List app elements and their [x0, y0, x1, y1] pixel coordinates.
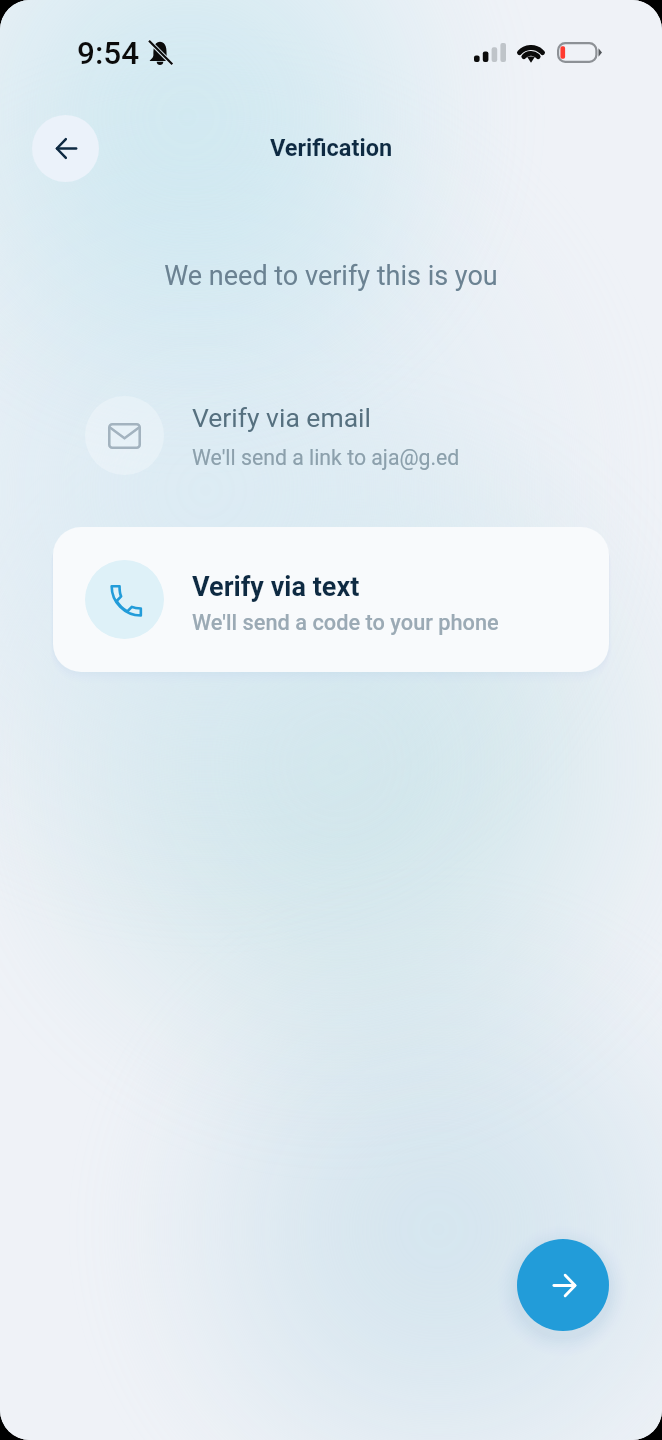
staticText: 9:54 [77, 35, 140, 72]
button[interactable]: Verify via text [53, 527, 609, 672]
staticText: We'll send a code to your phone [192, 610, 499, 635]
staticText: We'll send a link to aja@g.ed [192, 445, 460, 470]
button[interactable]: Verify via email [53, 396, 609, 475]
staticText: Verify via text [192, 571, 360, 603]
staticText: Verify via email [192, 402, 371, 433]
button[interactable]: Continue [517, 1239, 609, 1331]
staticText: Verification [0, 134, 662, 162]
button[interactable]: Back [32, 115, 99, 182]
staticText: We need to verify this is you [0, 260, 662, 292]
